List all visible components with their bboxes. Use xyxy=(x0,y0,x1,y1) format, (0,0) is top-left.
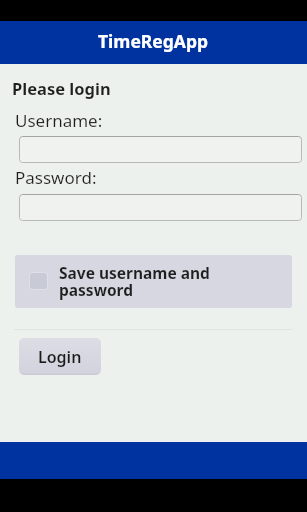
button[interactable]: Login xyxy=(19,338,101,375)
staticText: Login xyxy=(38,346,82,368)
staticText: Save username and password xyxy=(59,262,210,301)
staticText: TimeRegApp xyxy=(98,29,209,53)
button[interactable]: Username input xyxy=(19,136,302,163)
staticText: Please login xyxy=(12,77,111,99)
staticText: Password: xyxy=(15,166,97,189)
button[interactable]: Password input xyxy=(19,194,302,221)
button[interactable]: Save username and password xyxy=(15,255,292,308)
staticText: Username: xyxy=(15,109,103,132)
